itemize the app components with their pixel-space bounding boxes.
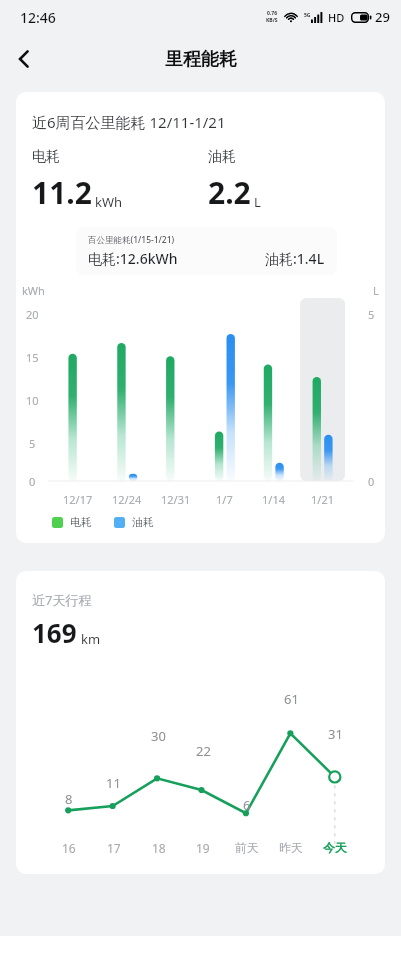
staticText: 12:46 [20, 8, 56, 27]
staticText: 0 [368, 474, 375, 489]
staticText: 11 [106, 774, 121, 792]
staticText: 电耗 [32, 148, 60, 166]
staticText: km [81, 630, 101, 648]
staticText: 油耗 [132, 515, 154, 529]
staticText: 20 [26, 307, 39, 322]
staticText: 61 [284, 690, 299, 708]
staticText: 31 [328, 725, 343, 743]
staticText: 近6周百公里能耗 12/11-1/21 [32, 112, 226, 132]
staticText: L [254, 193, 261, 211]
staticText: 电耗:12.6kWh [88, 249, 265, 268]
staticText: 今天 [323, 840, 347, 855]
button[interactable]: 近7天行程 [16, 571, 385, 874]
staticText: 12/24 [112, 492, 142, 507]
staticText: 22 [196, 742, 211, 760]
staticText: 1/14 [262, 492, 285, 507]
staticText: kWh [95, 193, 123, 211]
staticText: 0 [29, 474, 36, 489]
staticText: 5 [368, 307, 375, 322]
staticText: 百公里能耗(1/15-1/21) [88, 234, 175, 246]
button[interactable]: 近6周百公里能耗 12/11-1/21 [16, 92, 385, 543]
staticText: 12/31 [161, 492, 191, 507]
staticText: 10 [26, 393, 39, 408]
staticText: 5 [29, 436, 36, 451]
staticText: 29 [375, 8, 390, 26]
staticText: 6 [243, 796, 251, 814]
staticText: 1/21 [311, 492, 334, 507]
staticText: 8 [65, 790, 73, 808]
staticText: 15 [26, 350, 39, 365]
staticText: 0.76 [267, 10, 277, 17]
staticText: 油耗 [208, 148, 236, 166]
staticText: 昨天 [279, 840, 303, 855]
staticText: 169 [32, 615, 77, 650]
staticText: 里程能耗 [165, 48, 237, 71]
staticText: 前天 [235, 840, 259, 855]
staticText: 11.2 [32, 172, 92, 213]
staticText: 电耗 [70, 515, 92, 529]
staticText: 5G [304, 12, 311, 19]
staticText: 近7天行程 [32, 591, 92, 609]
staticText: 12/17 [63, 492, 93, 507]
staticText: kWh [22, 283, 45, 298]
button[interactable]: Back [0, 35, 48, 83]
staticText: HD [328, 10, 345, 25]
staticText: 30 [151, 727, 166, 745]
staticText: 2.2 [208, 172, 251, 213]
staticText: L [373, 283, 379, 298]
staticText: 17 [107, 840, 121, 856]
staticText: 油耗:1.4L [265, 249, 325, 268]
staticText: 19 [196, 840, 210, 856]
staticText: KB/S [266, 17, 278, 24]
staticText: 1/7 [216, 492, 233, 507]
staticText: 18 [152, 840, 166, 856]
staticText: 16 [62, 840, 76, 856]
